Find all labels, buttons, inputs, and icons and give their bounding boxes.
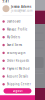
button[interactable]: Security Login [0, 49, 35, 57]
button[interactable]: Logout [3, 88, 31, 94]
staticText: Order Requests [7, 59, 29, 62]
staticText: Jessica Adams [11, 5, 31, 8]
button[interactable]: Order Requests [0, 57, 35, 65]
staticText: My Orders [7, 35, 20, 39]
staticText: Payment Method [7, 67, 30, 70]
staticText: Manage Profile [7, 28, 28, 31]
staticText: 9:41 [2, 0, 9, 3]
button[interactable]: Account Details [0, 72, 35, 80]
button[interactable]: My Orders [0, 33, 35, 41]
button[interactable]: Dashboard [0, 18, 35, 25]
button[interactable]: Manage Profile [0, 25, 35, 33]
staticText: Account Details [7, 75, 28, 78]
staticText: jessica@mail.com [11, 9, 32, 12]
staticText: Security Login [7, 51, 26, 55]
button[interactable]: Payment Method [0, 65, 35, 72]
staticText: Saved Items [7, 43, 22, 47]
button[interactable]: Shipping Center [0, 80, 35, 88]
staticText: Logout [12, 89, 22, 93]
staticText: Dashboard [7, 20, 21, 23]
button[interactable]: Saved Items [0, 41, 35, 49]
staticText: Shipping Center [7, 82, 31, 86]
